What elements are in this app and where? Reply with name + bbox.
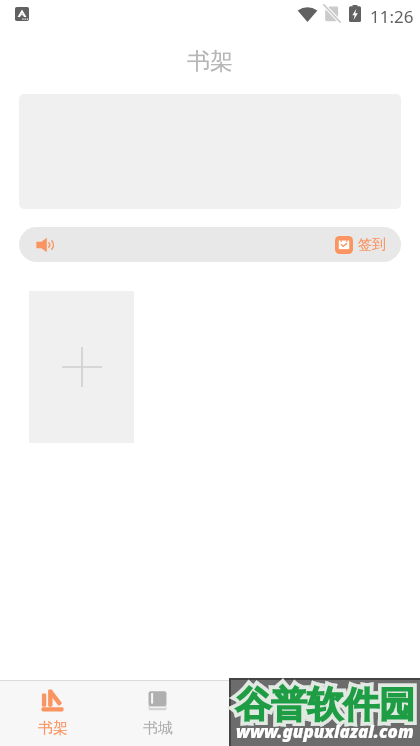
staticText: 签到	[358, 236, 386, 254]
staticText: 书架	[187, 47, 233, 76]
button[interactable]: 书架	[0, 681, 105, 746]
staticText: 书城	[143, 719, 173, 738]
staticText: www.gupuxlazal.com	[236, 720, 414, 743]
button[interactable]: 书城	[105, 681, 210, 746]
staticText: 谷普软件园	[235, 682, 415, 727]
staticText: 书架	[38, 719, 68, 738]
button[interactable]: Check in	[335, 236, 386, 254]
staticText: 11:26	[370, 5, 414, 28]
button[interactable]: Announcement	[36, 237, 54, 253]
staticText: 谷普软件园	[235, 682, 415, 727]
